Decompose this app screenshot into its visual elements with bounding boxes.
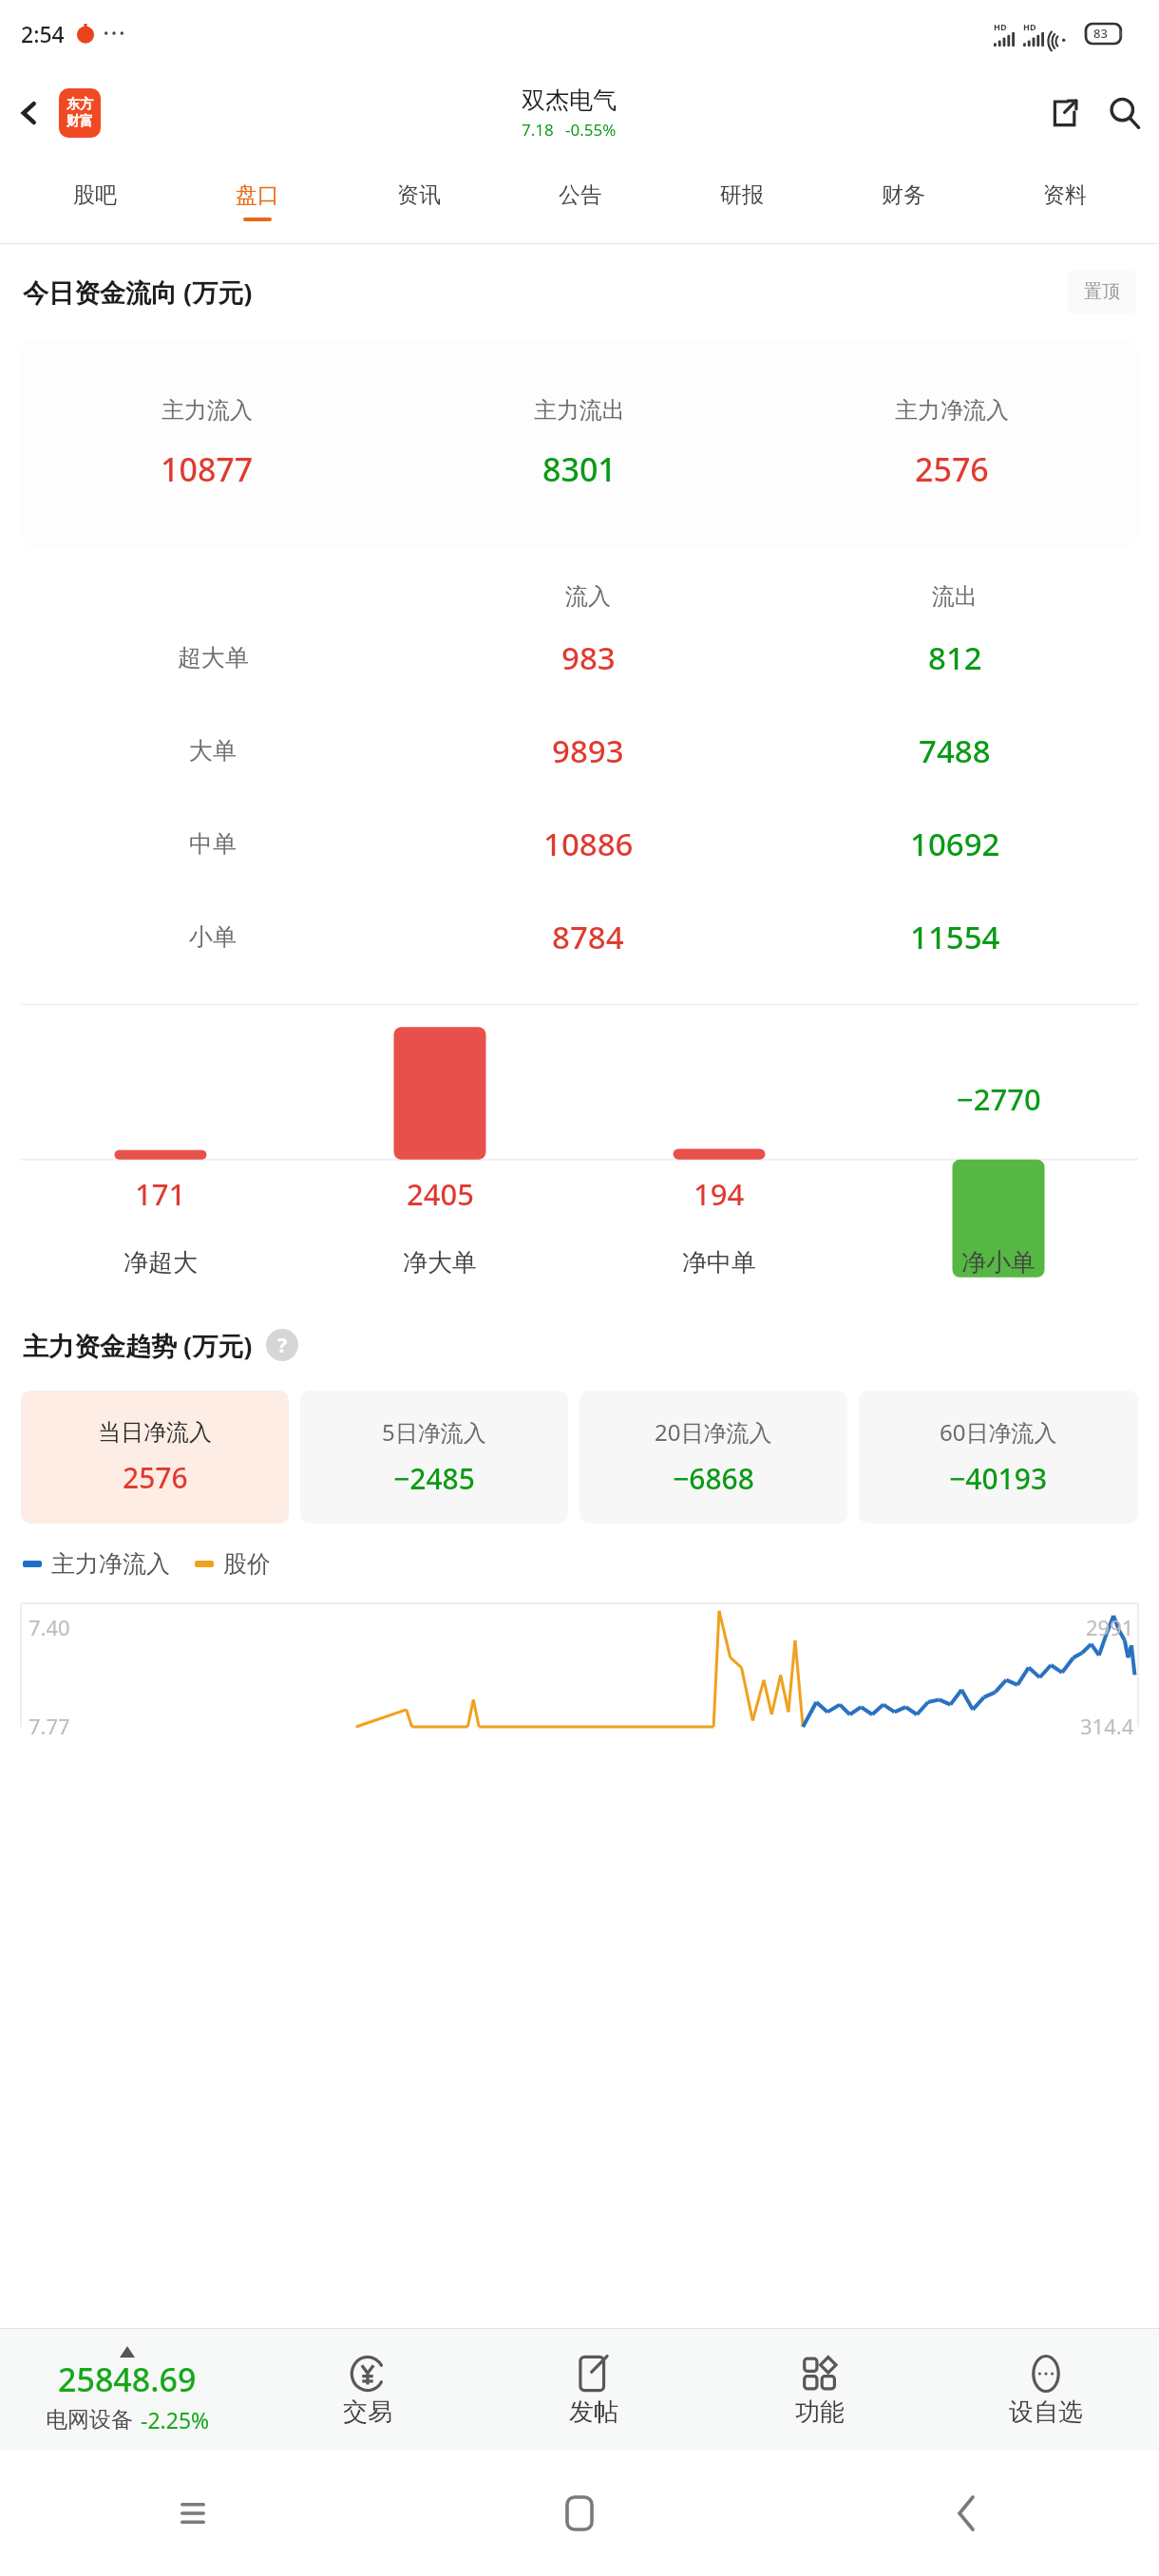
- staticText: 314.4: [1080, 1712, 1134, 1740]
- staticText: 净小单: [961, 1247, 1035, 1279]
- staticText: 2405: [407, 1174, 474, 1214]
- staticText: ?: [277, 1332, 288, 1359]
- staticText: 今日资金流向 (万元): [23, 275, 253, 310]
- staticText: 盘口: [236, 181, 279, 209]
- button[interactable]: 公告: [500, 160, 661, 243]
- staticText: 电网设备: [46, 2406, 133, 2434]
- button[interactable]: Help: [266, 1329, 298, 1361]
- staticText: 5日净流入: [382, 1416, 486, 1448]
- button[interactable]: Share: [1037, 86, 1091, 140]
- staticText: 83: [1093, 25, 1108, 42]
- staticText: 25848.69: [58, 2358, 197, 2401]
- staticText: 大单: [189, 736, 237, 766]
- staticText: 主力流出: [534, 396, 625, 425]
- staticText: 超大单: [178, 643, 249, 672]
- staticText: 东方: [66, 96, 93, 113]
- button[interactable]: 东方: [59, 88, 101, 138]
- button[interactable]: 股吧: [13, 160, 176, 243]
- button[interactable]: 财务: [823, 160, 984, 243]
- staticText: 净大单: [403, 1247, 477, 1279]
- staticText: 194: [693, 1174, 745, 1214]
- staticText: 2576: [123, 1458, 188, 1497]
- staticText: 812: [928, 636, 982, 679]
- staticText: 财务: [882, 181, 925, 209]
- staticText: 净中单: [682, 1247, 756, 1279]
- staticText: 11554: [910, 916, 1000, 958]
- staticText: 主力流入: [161, 396, 253, 425]
- staticText: 7.40: [28, 1613, 70, 1641]
- button[interactable]: 5日净流入: [300, 1391, 568, 1524]
- staticText: 资料: [1043, 181, 1087, 209]
- staticText: 中单: [189, 829, 237, 859]
- button[interactable]: 20日净流入: [579, 1391, 847, 1524]
- button[interactable]: 资料: [984, 160, 1146, 243]
- staticText: 2:54: [21, 19, 65, 48]
- staticText: 8301: [542, 447, 617, 491]
- staticText: 净超大: [123, 1247, 198, 1279]
- staticText: 10877: [161, 447, 254, 491]
- staticText: 功能: [795, 2396, 845, 2428]
- staticText: 流入: [565, 582, 611, 611]
- staticText: −6868: [673, 1459, 754, 1498]
- button[interactable]: 超大单: [21, 611, 1138, 704]
- staticText: 小单: [189, 922, 237, 952]
- button[interactable]: 当日净流入: [21, 1391, 289, 1524]
- staticText: 2576: [915, 447, 989, 491]
- button[interactable]: 小单: [21, 890, 1138, 983]
- staticText: 2991: [1086, 1613, 1134, 1641]
- staticText: HD: [1023, 21, 1036, 32]
- staticText: 流出: [932, 582, 978, 611]
- staticText: 10886: [543, 823, 634, 865]
- button[interactable]: 交易: [255, 2329, 481, 2451]
- staticText: 双杰电气: [522, 85, 617, 115]
- staticText: 设自选: [1009, 2396, 1083, 2428]
- button[interactable]: 置顶: [1068, 270, 1136, 313]
- staticText: 股价: [223, 1549, 271, 1579]
- button[interactable]: Back: [0, 66, 59, 160]
- staticText: 983: [561, 636, 616, 679]
- staticText: -0.55%: [565, 119, 617, 141]
- staticText: 公告: [559, 181, 602, 209]
- staticText: 10692: [910, 823, 1000, 865]
- staticText: 7.18: [522, 119, 554, 141]
- staticText: 股吧: [73, 181, 117, 209]
- staticText: 7.77: [28, 1712, 70, 1740]
- staticText: 资讯: [397, 181, 441, 209]
- button[interactable]: 25848.69: [0, 2329, 255, 2451]
- staticText: 171: [135, 1174, 186, 1214]
- button[interactable]: 主力流入: [21, 339, 1138, 548]
- staticText: 发帖: [569, 2396, 618, 2428]
- button[interactable]: 盘口: [176, 160, 338, 243]
- button[interactable]: 资讯: [338, 160, 500, 243]
- button[interactable]: 发帖: [481, 2329, 707, 2451]
- staticText: −2770: [957, 1079, 1041, 1119]
- button[interactable]: Back: [772, 2451, 1159, 2576]
- button[interactable]: Search: [1091, 79, 1159, 147]
- staticText: 9893: [552, 729, 624, 772]
- staticText: 7488: [919, 729, 991, 772]
- button[interactable]: 研报: [661, 160, 823, 243]
- staticText: 主力资金趋势 (万元): [23, 1328, 253, 1363]
- staticText: 当日净流入: [98, 1418, 212, 1447]
- staticText: 财富: [66, 113, 93, 130]
- staticText: 置顶: [1084, 280, 1120, 303]
- button[interactable]: 设自选: [933, 2329, 1159, 2451]
- staticText: -2.25%: [141, 2405, 210, 2434]
- button[interactable]: 大单: [21, 704, 1138, 797]
- button[interactable]: Home: [386, 2451, 772, 2576]
- staticText: −40193: [949, 1459, 1048, 1498]
- button[interactable]: Recents: [0, 2451, 386, 2576]
- staticText: HD: [994, 21, 1007, 32]
- button[interactable]: 60日净流入: [859, 1391, 1138, 1524]
- staticText: 主力净流入: [895, 396, 1009, 425]
- staticText: 研报: [720, 181, 764, 209]
- staticText: 60日净流入: [940, 1416, 1057, 1448]
- staticText: 20日净流入: [655, 1416, 772, 1448]
- staticText: 8784: [552, 916, 624, 958]
- button[interactable]: 功能: [707, 2329, 933, 2451]
- button[interactable]: 中单: [21, 797, 1138, 890]
- staticText: 交易: [343, 2396, 392, 2428]
- staticText: −2485: [393, 1459, 475, 1498]
- staticText: 主力净流入: [51, 1549, 170, 1579]
